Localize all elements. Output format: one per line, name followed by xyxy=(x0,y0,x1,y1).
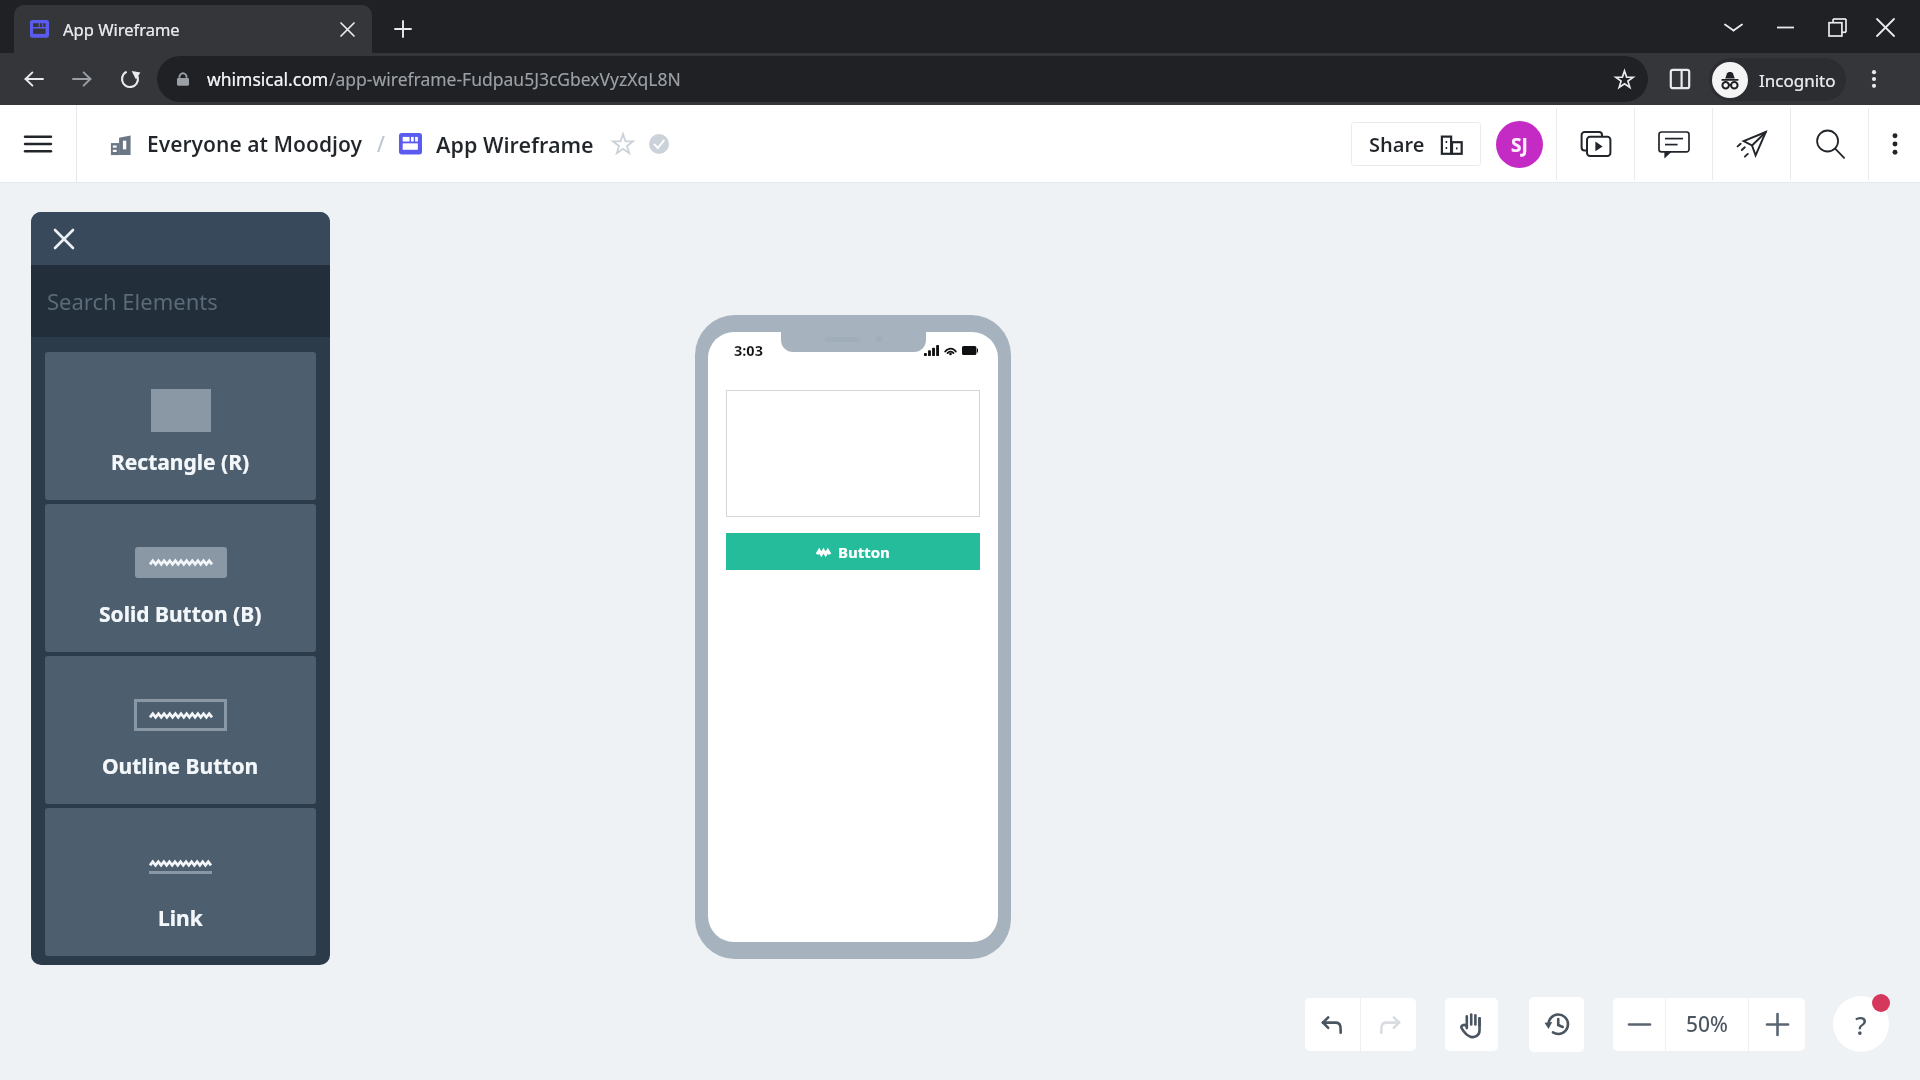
button[interactable]: Side panel xyxy=(1666,65,1694,93)
staticText: Outline Button xyxy=(102,752,259,781)
staticText: whimsical.com xyxy=(207,67,329,91)
button[interactable]: Favorite xyxy=(608,129,638,159)
button[interactable]: whimsical.com xyxy=(157,56,1648,102)
staticText: / xyxy=(377,130,385,159)
button[interactable]: Button xyxy=(726,533,980,570)
staticText: Everyone at Moodjoy xyxy=(147,130,363,159)
button[interactable]: Everyone at Moodjoy xyxy=(109,130,363,159)
button[interactable]: Rectangle (R) xyxy=(45,352,316,500)
button[interactable]: New tab xyxy=(385,11,421,47)
button[interactable]: Saved xyxy=(644,129,674,159)
staticText: App Wireframe xyxy=(63,18,180,40)
button[interactable]: Help xyxy=(1833,996,1889,1052)
staticText: Incognito xyxy=(1759,69,1836,92)
button[interactable]: Search xyxy=(1791,105,1868,183)
staticText: Search Elements xyxy=(47,286,218,316)
staticText: Link xyxy=(158,904,203,933)
button[interactable]: Link xyxy=(45,808,316,956)
button[interactable]: Forward xyxy=(64,61,100,97)
button[interactable]: Bookmark xyxy=(1608,63,1640,95)
button[interactable]: Redo xyxy=(1361,998,1416,1051)
button[interactable]: Present xyxy=(1557,105,1634,183)
button[interactable]: App Wireframe xyxy=(14,5,372,53)
button[interactable]: Tab search xyxy=(1718,12,1748,42)
button[interactable]: 50% xyxy=(1666,998,1748,1051)
staticText: /app-wireframe-Fudpau5J3cGbexVyzXqL8N xyxy=(329,67,681,91)
button[interactable]: Outline Button xyxy=(45,656,316,804)
staticText: Solid Button (B) xyxy=(99,600,262,629)
button[interactable]: Undo xyxy=(1305,998,1360,1051)
button[interactable]: Close panel xyxy=(49,224,79,254)
staticText: Rectangle (R) xyxy=(111,448,250,477)
button[interactable]: Menu xyxy=(0,105,76,183)
button[interactable]: Share xyxy=(1351,122,1481,166)
button[interactable]: More xyxy=(1869,105,1920,183)
button[interactable]: Solid Button (B) xyxy=(45,504,316,652)
button[interactable]: Back xyxy=(16,61,52,97)
button[interactable]: Close tab xyxy=(334,16,360,42)
staticText: 3:03 xyxy=(734,340,763,360)
staticText: SJ xyxy=(1511,132,1528,158)
button[interactable]: Zoom in xyxy=(1749,998,1805,1051)
button[interactable]: SJ xyxy=(1496,121,1543,168)
button[interactable]: Pan xyxy=(1445,998,1498,1051)
staticText: Share xyxy=(1369,131,1425,158)
staticText: 50% xyxy=(1686,1010,1728,1039)
button[interactable]: Zoom out xyxy=(1613,998,1665,1051)
button[interactable]: Comments xyxy=(1635,105,1712,183)
button[interactable]: More options xyxy=(1859,64,1889,94)
button[interactable]: Send xyxy=(1713,105,1790,183)
staticText: Button xyxy=(838,542,890,562)
button[interactable]: Incognito xyxy=(1709,58,1846,101)
button[interactable]: App Wireframe xyxy=(399,130,594,159)
staticText: App Wireframe xyxy=(436,130,594,159)
button[interactable]: Close window xyxy=(1870,12,1900,42)
button[interactable]: Restore xyxy=(1822,12,1852,42)
staticText: ? xyxy=(1855,1007,1867,1042)
button[interactable]: History xyxy=(1529,997,1584,1052)
button[interactable]: Minimize xyxy=(1770,12,1800,42)
button[interactable]: Reload xyxy=(112,61,148,97)
